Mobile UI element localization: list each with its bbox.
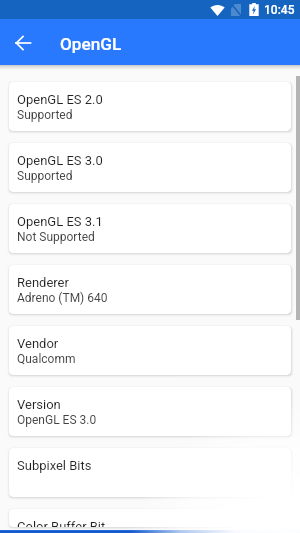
button[interactable]: Back <box>8 28 38 58</box>
staticText: Supported <box>17 108 73 122</box>
staticText: Not Supported <box>17 230 95 244</box>
staticText: OpenGL ES 2.0 <box>17 92 103 107</box>
staticText: OpenGL ES 3.0 <box>17 153 103 168</box>
button[interactable]: Subpixel Bits <box>9 448 291 497</box>
button[interactable]: OpenGL ES 2.0 <box>9 82 291 131</box>
button[interactable]: Color Buffer Bit <box>9 509 291 527</box>
button[interactable]: OpenGL ES 3.0 <box>9 143 291 192</box>
staticText: Color Buffer Bit <box>17 519 106 527</box>
staticText: OpenGL <box>60 34 122 54</box>
staticText: Supported <box>17 169 73 183</box>
button[interactable]: OpenGL ES 3.1 <box>9 204 291 253</box>
staticText: Subpixel Bits <box>17 458 92 473</box>
staticText: Vendor <box>17 336 59 351</box>
button[interactable]: Vendor <box>9 326 291 375</box>
button[interactable]: Version <box>9 387 291 436</box>
staticText: OpenGL ES 3.0 <box>17 413 97 427</box>
staticText: Adreno (TM) 640 <box>17 291 108 305</box>
staticText: 10:45 <box>264 3 295 17</box>
staticText: Renderer <box>17 275 69 290</box>
button[interactable]: Renderer <box>9 265 291 314</box>
staticText: OpenGL ES 3.1 <box>17 214 103 229</box>
staticText: Version <box>17 397 61 412</box>
staticText: Qualcomm <box>17 352 76 366</box>
